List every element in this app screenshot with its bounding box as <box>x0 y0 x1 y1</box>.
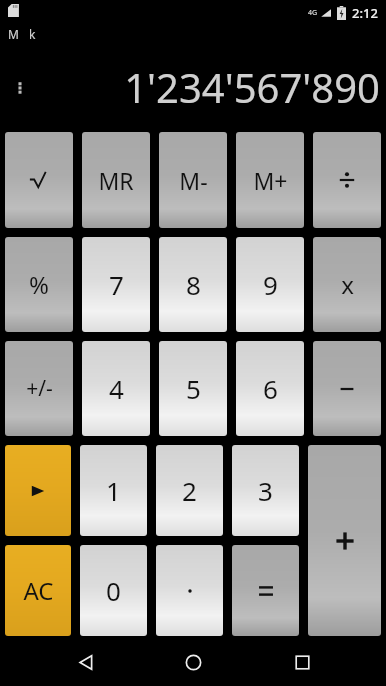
staticText: MR <box>98 165 134 196</box>
button[interactable]: M- <box>159 132 227 228</box>
button[interactable]: Recent apps <box>278 638 326 686</box>
staticText: M- <box>179 165 208 196</box>
button[interactable]: +/- <box>5 341 73 436</box>
button[interactable]: M+ <box>236 132 304 228</box>
button[interactable]: MR <box>82 132 150 228</box>
button[interactable]: More options <box>6 73 34 101</box>
staticText: k <box>29 26 36 42</box>
button[interactable]: 4 <box>82 341 150 436</box>
staticText: 2:12 <box>352 4 378 22</box>
button[interactable]: Back <box>61 638 109 686</box>
staticText: 4G <box>308 8 318 18</box>
staticText: 6 <box>263 371 278 406</box>
button[interactable]: Plus <box>308 445 381 636</box>
button[interactable]: 1 <box>80 445 147 536</box>
button[interactable]: Divide <box>313 132 381 228</box>
staticText: x <box>341 268 354 301</box>
button[interactable]: Square root <box>5 132 73 228</box>
staticText: 0 <box>106 573 121 608</box>
staticText: AC <box>23 574 54 607</box>
button[interactable]: % <box>5 237 73 332</box>
staticText: M <box>8 26 19 42</box>
staticText: 9 <box>263 267 278 302</box>
staticText: M+ <box>253 165 288 196</box>
staticText: 4 <box>109 371 124 406</box>
button[interactable]: 6 <box>236 341 304 436</box>
staticText: 7 <box>109 267 124 302</box>
staticText: 2 <box>182 473 197 508</box>
button[interactable]: 2 <box>156 445 223 536</box>
button[interactable]: Home <box>169 638 217 686</box>
staticText: % <box>29 268 49 301</box>
button[interactable]: AC <box>5 545 71 636</box>
staticText: 1'234'567'890 <box>124 60 380 114</box>
button[interactable]: 0 <box>80 545 147 636</box>
button[interactable]: 7 <box>82 237 150 332</box>
button[interactable]: 5 <box>159 341 227 436</box>
staticText: 3 <box>258 473 273 508</box>
button[interactable]: x <box>313 237 381 332</box>
button[interactable]: Equals <box>232 545 299 636</box>
button[interactable]: 8 <box>159 237 227 332</box>
button[interactable]: Minus <box>313 341 381 436</box>
staticText: 8 <box>186 267 201 302</box>
staticText: 5 <box>186 371 201 406</box>
button[interactable]: 9 <box>236 237 304 332</box>
button[interactable]: 3 <box>232 445 299 536</box>
staticText: +/- <box>26 374 53 403</box>
staticText: 1 <box>106 473 121 508</box>
button[interactable]: Execute <box>5 445 71 536</box>
button[interactable]: Decimal point <box>156 545 223 636</box>
